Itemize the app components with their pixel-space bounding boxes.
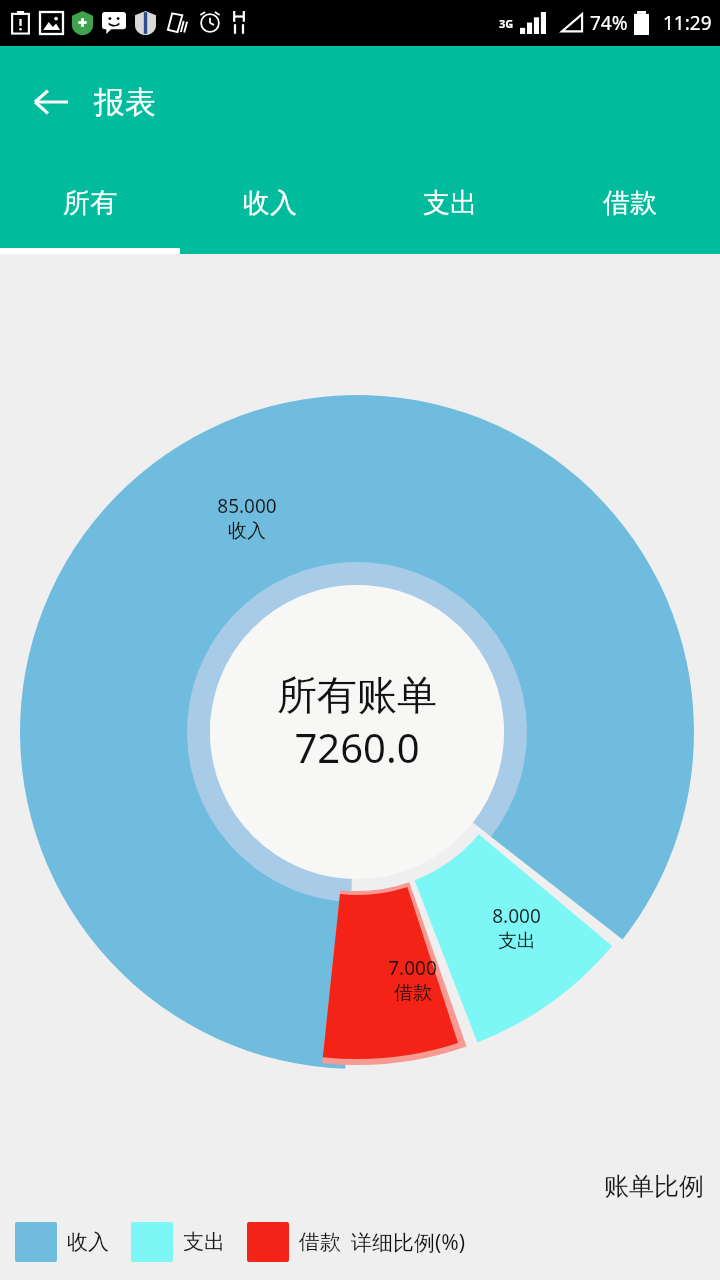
staticText: 详细比例(%) — [351, 1228, 466, 1257]
staticText: 3G — [499, 16, 514, 31]
button[interactable]: 借款 — [540, 158, 720, 248]
staticText: 支出 — [498, 929, 536, 953]
button[interactable]: 所有 — [0, 158, 180, 248]
staticText: 支出 — [423, 186, 477, 220]
staticText: 账单比例 — [604, 1171, 704, 1202]
staticText: 74% — [590, 10, 628, 36]
button[interactable]: 支出 — [360, 158, 540, 248]
staticText: 85.000 — [217, 493, 277, 519]
staticText: 所有 — [63, 186, 117, 220]
staticText: 支出 — [183, 1229, 225, 1255]
staticText: 7.000 — [388, 955, 437, 981]
staticText: 收入 — [243, 186, 297, 220]
staticText: 报表 — [94, 83, 156, 122]
staticText: 11:29 — [663, 10, 712, 36]
staticText: 7260.0 — [294, 720, 420, 774]
staticText: 8.000 — [492, 903, 541, 929]
staticText: 收入 — [67, 1229, 109, 1255]
staticText: 收入 — [228, 519, 266, 543]
button[interactable]: Back — [22, 73, 80, 131]
button[interactable]: 收入 — [180, 158, 360, 248]
staticText: 所有账单 — [277, 670, 437, 720]
staticText: 借款 — [603, 186, 657, 220]
staticText: 借款 — [394, 981, 432, 1005]
staticText: 借款 — [299, 1229, 341, 1255]
